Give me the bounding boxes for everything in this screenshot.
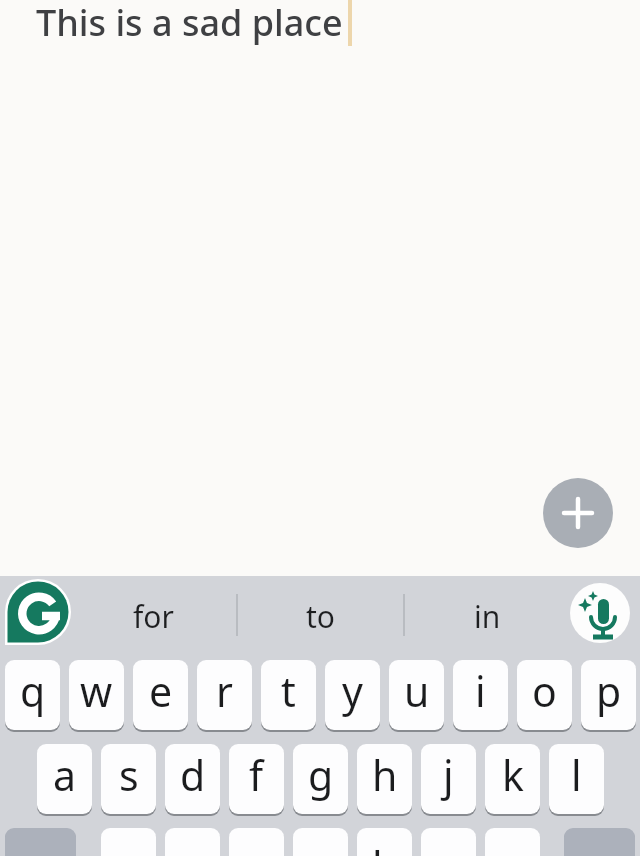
- staticText: q: [20, 663, 46, 719]
- staticText: This is a sad place: [36, 0, 343, 47]
- button[interactable]: k: [485, 744, 540, 814]
- button[interactable]: a: [37, 744, 92, 814]
- button[interactable]: r: [197, 660, 252, 730]
- button[interactable]: u: [389, 660, 444, 730]
- button[interactable]: i: [453, 660, 508, 730]
- button[interactable]: o: [517, 660, 572, 730]
- button[interactable]: t: [261, 660, 316, 730]
- staticText: y: [342, 663, 363, 719]
- button[interactable]: h: [357, 744, 412, 814]
- button[interactable]: x: [165, 828, 220, 856]
- button[interactable]: f: [229, 744, 284, 814]
- button[interactable]: j: [421, 744, 476, 814]
- staticText: to: [306, 596, 335, 637]
- staticText: r: [216, 663, 233, 719]
- staticText: i: [475, 663, 486, 719]
- button[interactable]: for: [70, 580, 237, 652]
- button[interactable]: [5, 579, 71, 645]
- button[interactable]: to: [237, 580, 404, 652]
- button[interactable]: in: [404, 580, 571, 652]
- staticText: for: [133, 596, 174, 637]
- button[interactable]: v: [293, 828, 348, 856]
- staticText: k: [502, 747, 524, 803]
- staticText: t: [281, 663, 296, 719]
- staticText: a: [53, 747, 77, 803]
- button[interactable]: l: [549, 744, 604, 814]
- staticText: s: [119, 747, 139, 803]
- button[interactable]: e: [133, 660, 188, 730]
- button[interactable]: p: [581, 660, 636, 730]
- button[interactable]: n: [421, 828, 476, 856]
- staticText: w: [80, 663, 113, 719]
- staticText: b: [372, 838, 398, 856]
- staticText: p: [596, 663, 622, 719]
- button[interactable]: [570, 583, 630, 643]
- button[interactable]: c: [229, 828, 284, 856]
- staticText: e: [149, 663, 173, 719]
- button[interactable]: m: [485, 828, 540, 856]
- staticText: l: [571, 747, 582, 803]
- button[interactable]: z: [101, 828, 156, 856]
- staticText: u: [404, 663, 430, 719]
- button[interactable]: [564, 828, 635, 856]
- button[interactable]: d: [165, 744, 220, 814]
- button[interactable]: s: [101, 744, 156, 814]
- button[interactable]: w: [69, 660, 124, 730]
- button[interactable]: q: [5, 660, 60, 730]
- staticText: j: [443, 747, 454, 803]
- staticText: h: [372, 747, 398, 803]
- staticText: o: [532, 663, 557, 719]
- button[interactable]: g: [293, 744, 348, 814]
- button[interactable]: y: [325, 660, 380, 730]
- button[interactable]: [543, 478, 613, 548]
- button[interactable]: [5, 828, 76, 856]
- staticText: f: [249, 747, 264, 803]
- button[interactable]: b: [357, 828, 412, 856]
- staticText: in: [474, 596, 501, 637]
- staticText: d: [180, 747, 206, 803]
- staticText: g: [308, 747, 334, 803]
